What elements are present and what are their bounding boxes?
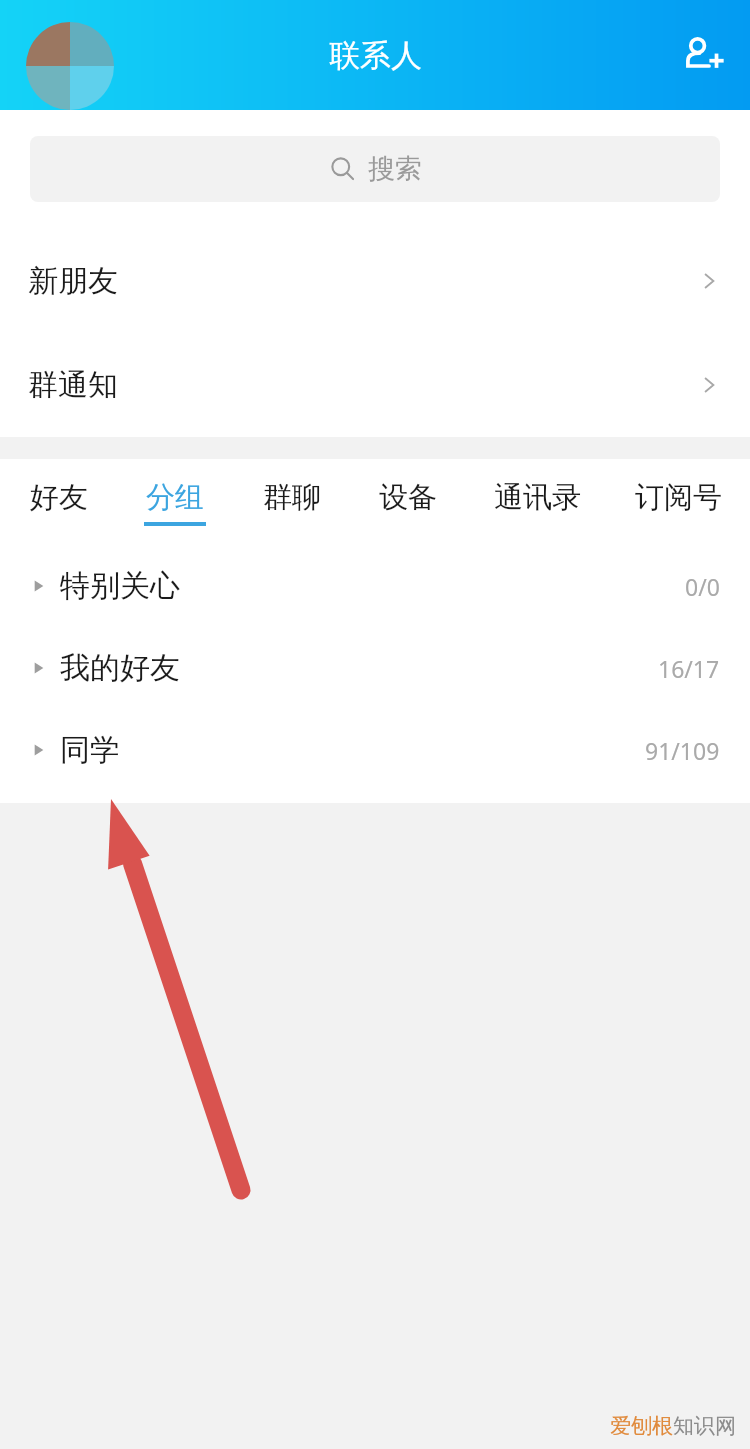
button[interactable]: 搜索 [30, 136, 720, 202]
staticText: 群通知 [28, 366, 118, 404]
staticText: 爱刨根 [610, 1413, 673, 1439]
button[interactable]: 群通知 [0, 333, 750, 437]
button[interactable]: 同学 [0, 709, 750, 791]
staticText: 群聊 [263, 479, 321, 516]
staticText: 新朋友 [28, 262, 118, 300]
staticText: 好友 [30, 479, 88, 516]
staticText: 我的好友 [60, 649, 180, 687]
staticText: 特别关心 [60, 567, 180, 605]
staticText: 91/109 [645, 735, 720, 766]
staticText: 同学 [60, 731, 120, 769]
button[interactable]: 特别关心 [0, 545, 750, 627]
button[interactable]: Profile avatar [26, 22, 114, 110]
staticText: 搜索 [368, 152, 422, 186]
button[interactable]: 新朋友 [0, 228, 750, 333]
button[interactable]: 好友 [18, 473, 100, 532]
button[interactable]: 我的好友 [0, 627, 750, 709]
staticText: 0/0 [685, 571, 720, 602]
button[interactable]: 设备 [367, 473, 449, 532]
button[interactable]: 分组 [134, 473, 216, 532]
button[interactable]: 通讯录 [484, 473, 591, 532]
staticText: 知识网 [673, 1413, 736, 1439]
button[interactable]: Add contact [670, 23, 734, 87]
staticText: 订阅号 [635, 479, 722, 516]
staticText: 通讯录 [494, 479, 581, 516]
button[interactable]: 群聊 [251, 473, 333, 532]
staticText: 分组 [146, 479, 204, 516]
button[interactable]: 订阅号 [625, 473, 732, 532]
staticText: 设备 [379, 479, 437, 516]
staticText: 联系人 [329, 36, 422, 75]
staticText: 16/17 [658, 653, 720, 684]
